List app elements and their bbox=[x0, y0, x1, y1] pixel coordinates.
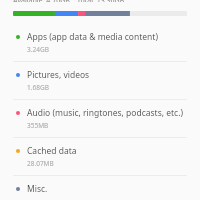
staticText: 3.24GB bbox=[27, 45, 49, 54]
button[interactable]: Misc. bbox=[0, 176, 200, 200]
staticText: Pictures, videos bbox=[27, 69, 90, 81]
staticText: Apps (app data & media content) bbox=[27, 31, 158, 43]
button[interactable]: Pictures, videos bbox=[0, 62, 200, 99]
button[interactable]: Apps (app data & media content) bbox=[0, 24, 200, 61]
button[interactable]: Audio (music, ringtones, podcasts, etc.) bbox=[0, 100, 200, 137]
staticText: Cached data bbox=[27, 145, 77, 157]
button[interactable]: Cached data bbox=[0, 138, 200, 175]
staticText: 28.07MB bbox=[27, 159, 54, 168]
staticText: Misc. bbox=[27, 183, 48, 193]
staticText: 1.68GB bbox=[27, 83, 49, 92]
staticText: Audio (music, ringtones, podcasts, etc.) bbox=[27, 107, 183, 119]
staticText: 355MB bbox=[27, 121, 49, 130]
staticText: Available: 4.70GB Total: 13.36GB bbox=[13, 0, 125, 2]
